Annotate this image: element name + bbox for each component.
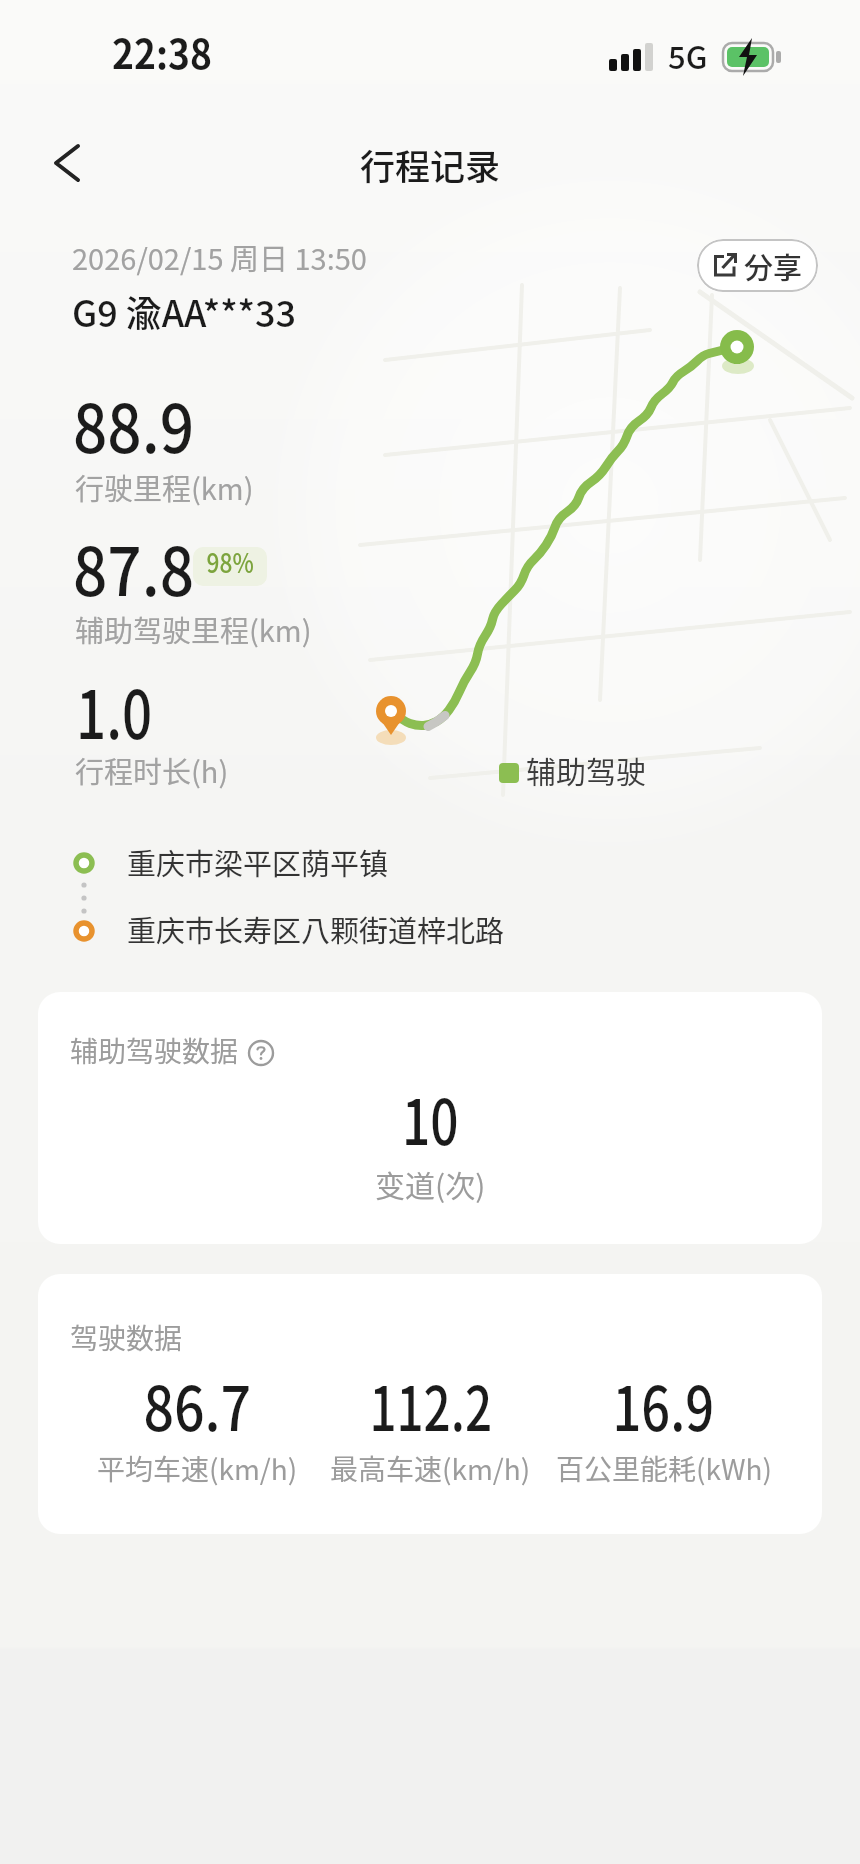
staticText: 驾驶数据 — [70, 1317, 183, 1358]
staticText: 86.7 — [143, 1360, 252, 1448]
staticText: 辅助驾驶里程(km) — [75, 608, 312, 650]
staticText: 辅助驾驶 — [526, 748, 646, 791]
staticText: 分享 — [744, 245, 803, 287]
staticText: 16.9 — [612, 1360, 715, 1448]
staticText: 行程时长(h) — [75, 749, 229, 791]
staticText: 10 — [402, 1073, 459, 1163]
button[interactable] — [36, 134, 94, 192]
staticText: 最高车速(km/h) — [330, 1448, 531, 1489]
staticText: 变道(次) — [375, 1162, 486, 1205]
staticText: 行驶里程(km) — [75, 466, 254, 508]
staticText: 重庆市长寿区八颗街道梓北路 — [127, 908, 505, 950]
staticText: 行程记录 — [360, 139, 501, 190]
staticText: 88.9 — [73, 375, 194, 472]
staticText: 5G — [668, 33, 708, 78]
staticText: 百公里能耗(kWh) — [556, 1448, 772, 1489]
staticText: 重庆市梁平区荫平镇 — [127, 841, 389, 883]
button[interactable]: 分享 — [697, 239, 818, 292]
staticText: 98% — [207, 547, 254, 581]
staticText: 平均车速(km/h) — [97, 1448, 298, 1489]
staticText: 87.8 — [73, 518, 194, 615]
staticText: 1.0 — [76, 661, 153, 758]
staticText: 112.2 — [369, 1360, 493, 1448]
staticText: 2026/02/15 周日 13:50 — [72, 236, 367, 278]
staticText: G9 渝AA***33 — [72, 285, 297, 337]
button[interactable] — [247, 1037, 275, 1065]
staticText: 辅助驾驶数据 — [70, 1030, 239, 1071]
staticText: 22:38 — [112, 23, 212, 81]
